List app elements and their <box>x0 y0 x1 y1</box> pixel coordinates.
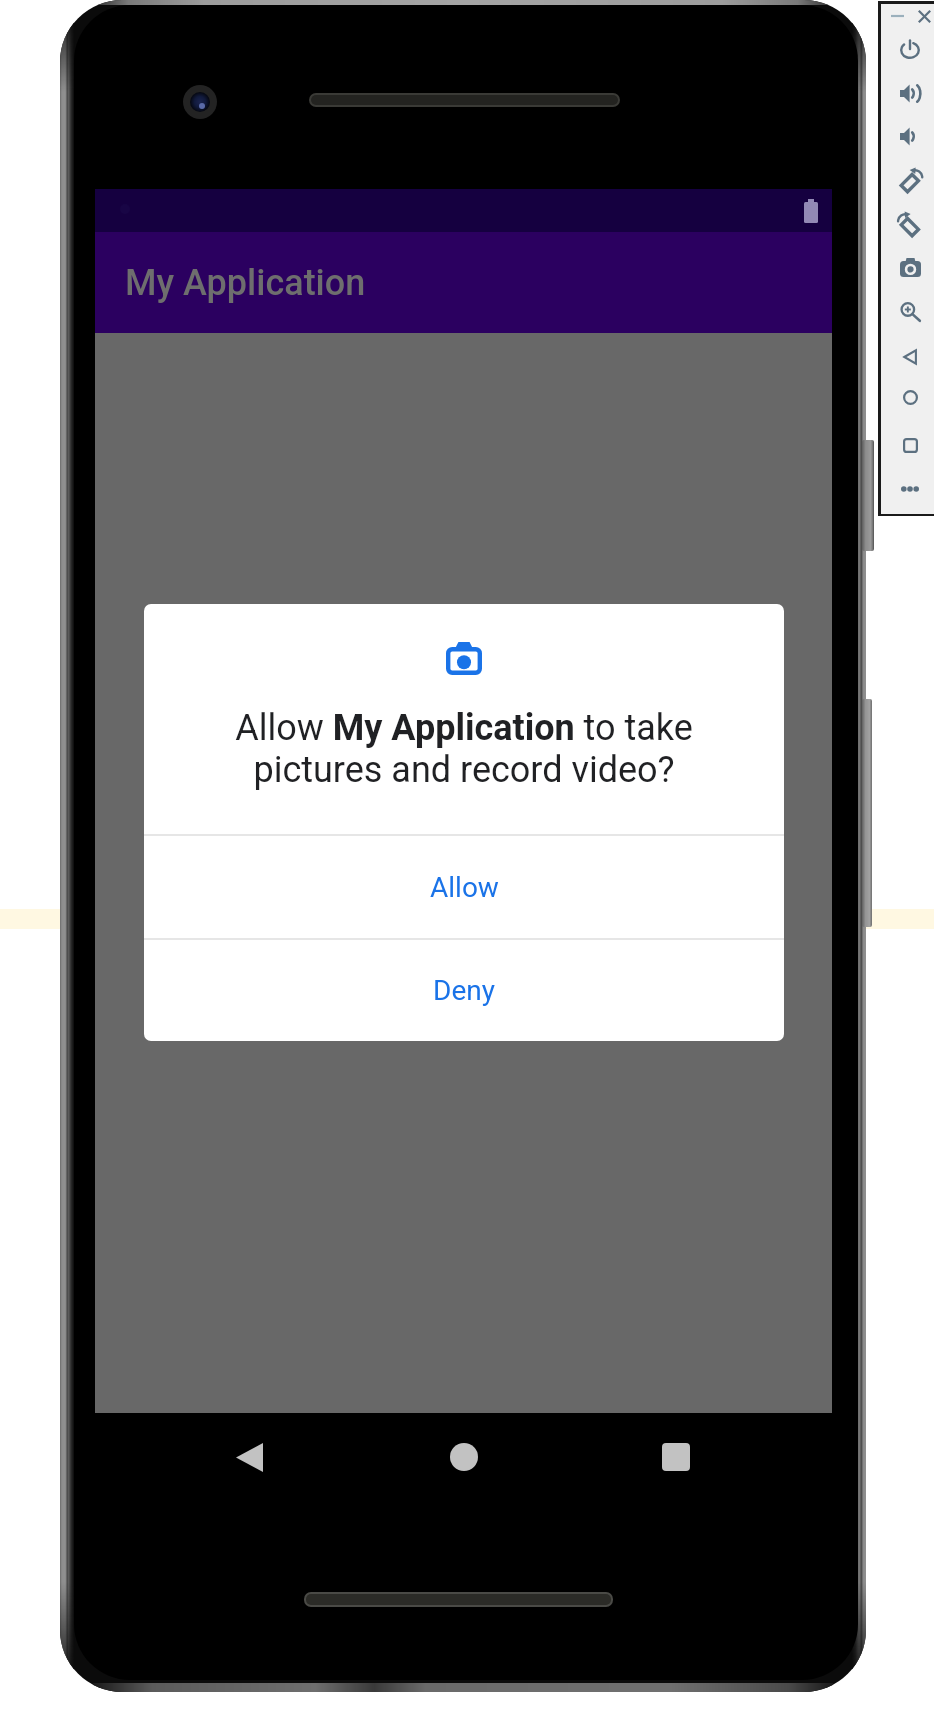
button[interactable]: Close <box>910 2 934 30</box>
button[interactable]: Home <box>416 1409 512 1505</box>
button[interactable]: Allow <box>144 836 784 938</box>
button[interactable]: Take screenshot <box>896 253 924 281</box>
button[interactable]: Minimize <box>883 2 911 30</box>
button[interactable]: Rotate right <box>896 211 924 239</box>
button[interactable]: Recent apps <box>628 1409 724 1505</box>
staticText: My Application <box>125 262 366 304</box>
button[interactable]: More <box>896 475 924 503</box>
staticText: Deny <box>433 974 495 1007</box>
button[interactable]: Overview <box>896 431 924 459</box>
staticText: Allow <box>430 871 499 904</box>
button[interactable]: Home <box>896 383 924 411</box>
staticText: Allow My Application to take pictures an… <box>216 707 712 791</box>
button[interactable]: Deny <box>144 940 784 1041</box>
button[interactable]: Back <box>896 343 924 371</box>
button[interactable]: Rotate left <box>896 167 924 195</box>
button[interactable]: Zoom <box>896 298 924 326</box>
button[interactable]: Back <box>201 1409 297 1505</box>
button[interactable]: Power <box>896 35 924 63</box>
button[interactable]: Volume down <box>896 122 924 150</box>
button[interactable]: Volume up <box>896 79 924 107</box>
